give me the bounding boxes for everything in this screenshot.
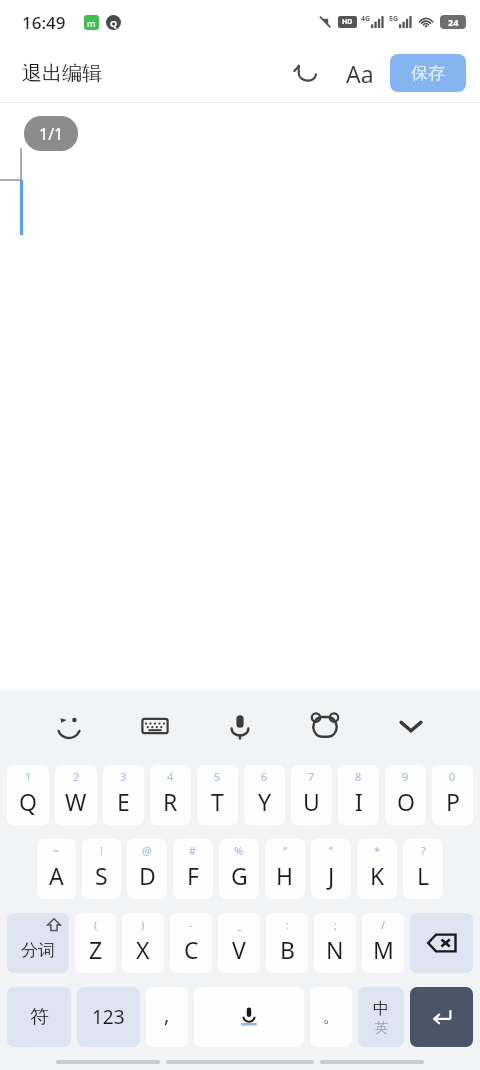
staticText: V — [232, 934, 246, 965]
button[interactable]: Baidu input — [299, 700, 351, 752]
button[interactable]: 退出编辑 — [0, 53, 124, 94]
button[interactable]: 分词 — [7, 913, 69, 973]
button[interactable]: , — [146, 987, 188, 1047]
staticText: * — [374, 843, 381, 858]
button[interactable]: # — [173, 839, 213, 899]
staticText: % — [234, 843, 244, 858]
staticText: ” — [329, 843, 333, 858]
staticText: 9 — [402, 769, 409, 784]
staticText: C — [184, 934, 199, 965]
staticText: 0 — [449, 769, 456, 784]
staticText: m — [87, 17, 96, 29]
staticText: 。 — [323, 1006, 340, 1027]
staticText: P — [446, 786, 460, 817]
button[interactable]: Space — [194, 987, 304, 1047]
button[interactable]: Hide keyboard — [385, 700, 437, 752]
staticText: @ — [142, 843, 152, 858]
button[interactable]: 2 — [55, 765, 97, 825]
staticText: Y — [258, 786, 272, 817]
staticText: M — [373, 934, 394, 965]
button[interactable]: 123 — [77, 987, 140, 1047]
staticText: H — [276, 860, 294, 891]
staticText: U — [303, 786, 320, 817]
button[interactable]: ! — [82, 839, 121, 899]
staticText: 7 — [308, 769, 315, 784]
staticText: F — [187, 860, 199, 891]
staticText: # — [189, 843, 197, 858]
button[interactable]: % — [219, 839, 259, 899]
staticText: : — [286, 917, 289, 932]
staticText: ? — [421, 843, 426, 858]
staticText: 退出编辑 — [22, 61, 102, 86]
button[interactable]: @ — [127, 839, 167, 899]
staticText: 5G — [389, 14, 399, 24]
button[interactable]: 1 — [7, 765, 49, 825]
button[interactable]: Text style — [338, 51, 382, 95]
button[interactable]: 5 — [197, 765, 238, 825]
staticText: _ — [237, 917, 242, 932]
button[interactable]: / — [362, 913, 404, 973]
staticText: 符 — [30, 1005, 49, 1029]
staticText: L — [417, 860, 430, 891]
staticText: / — [381, 917, 386, 932]
staticText: - — [189, 917, 193, 932]
button[interactable]: Enter — [410, 987, 473, 1047]
staticText: ; — [334, 917, 337, 932]
button[interactable]: 3 — [103, 765, 144, 825]
staticText: ( — [94, 917, 98, 932]
staticText: 1/1 — [39, 123, 64, 145]
button[interactable]: ? — [403, 839, 443, 899]
button[interactable]: 保存 — [390, 54, 466, 92]
staticText: 1 — [25, 769, 32, 784]
button[interactable]: 符 — [7, 987, 71, 1047]
staticText: 4G — [361, 14, 371, 24]
button[interactable]: ) — [122, 913, 164, 973]
button[interactable]: ; — [314, 913, 356, 973]
button[interactable]: Emoji — [43, 700, 95, 752]
button[interactable]: 8 — [338, 765, 379, 825]
button[interactable]: ( — [75, 913, 116, 973]
button[interactable]: 中 — [358, 987, 404, 1047]
staticText: 4 — [167, 769, 174, 784]
staticText: , — [164, 1001, 170, 1028]
staticText: 24 — [448, 16, 459, 28]
staticText: A — [49, 860, 64, 891]
staticText: N — [326, 934, 344, 965]
button[interactable]: ” — [311, 839, 351, 899]
staticText: G — [231, 860, 248, 891]
staticText: ! — [100, 843, 103, 858]
button[interactable]: ~ — [37, 839, 76, 899]
staticText: S — [95, 860, 108, 891]
staticText: 6 — [261, 769, 268, 784]
staticText: W — [65, 786, 87, 817]
button[interactable]: “ — [265, 839, 305, 899]
button[interactable]: - — [170, 913, 212, 973]
button[interactable]: 7 — [291, 765, 332, 825]
staticText: 分词 — [21, 940, 55, 961]
staticText: 3 — [120, 769, 127, 784]
button[interactable]: 6 — [244, 765, 285, 825]
button[interactable]: Undo — [284, 51, 328, 95]
button[interactable]: Keyboard layout — [129, 700, 181, 752]
button[interactable]: 0 — [432, 765, 473, 825]
button[interactable]: _ — [218, 913, 260, 973]
staticText: I — [355, 786, 363, 817]
staticText: Q — [110, 17, 118, 29]
staticText: 123 — [92, 1004, 125, 1030]
button[interactable]: 9 — [385, 765, 426, 825]
staticText: HD — [342, 17, 353, 27]
staticText: T — [211, 786, 224, 817]
button[interactable]: 4 — [150, 765, 191, 825]
staticText: D — [139, 860, 156, 891]
staticText: ) — [141, 917, 145, 932]
staticText: 2 — [73, 769, 80, 784]
button[interactable]: Voice input — [214, 700, 266, 752]
button[interactable]: * — [357, 839, 397, 899]
button[interactable]: : — [266, 913, 308, 973]
button[interactable]: Backspace — [410, 913, 473, 973]
staticText: 8 — [355, 769, 362, 784]
staticText: O — [397, 786, 415, 817]
button[interactable]: 。 — [310, 987, 352, 1047]
staticText: Aa — [346, 58, 374, 89]
staticText: 英 — [375, 1019, 388, 1035]
